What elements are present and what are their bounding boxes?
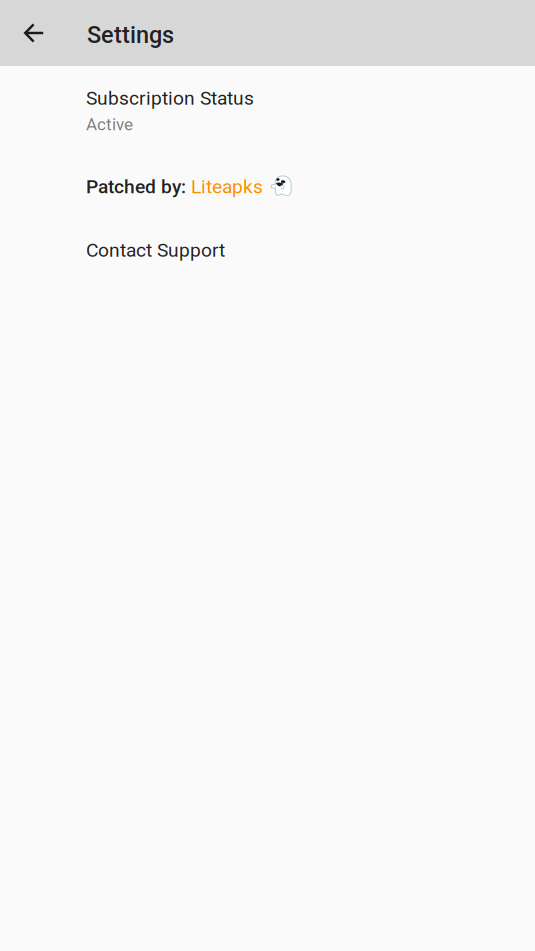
staticText: Patched by: [86,175,191,198]
staticText: Subscription Status [86,87,254,109]
button[interactable]: Back [0,0,87,66]
staticText: Liteapks [191,175,263,198]
staticText: Settings [87,21,174,49]
button[interactable]: Liteapks [191,175,294,198]
button[interactable]: Contact Support [86,239,225,261]
staticText: Active [86,114,133,134]
staticText: Contact Support [86,239,225,261]
